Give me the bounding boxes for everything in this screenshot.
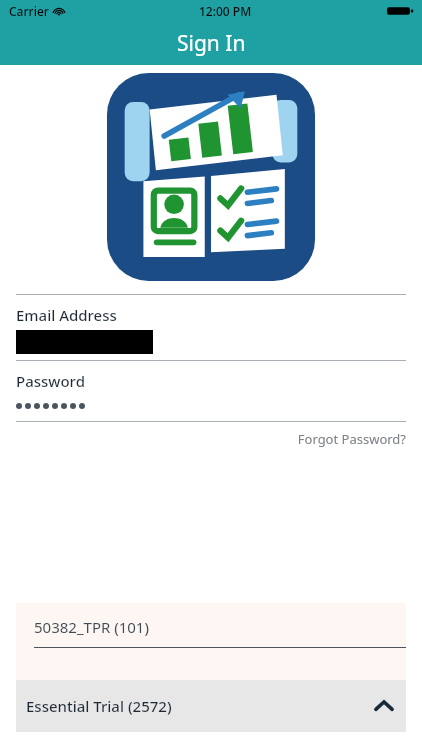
- staticText: Password: [16, 371, 85, 391]
- staticText: Sign In: [177, 29, 246, 58]
- button[interactable]: 50382_TPR (101): [16, 603, 406, 680]
- button[interactable]: Email address field: [16, 330, 406, 354]
- staticText: Forgot Password?: [297, 430, 406, 448]
- other: Collapse: [372, 694, 396, 718]
- button[interactable]: Forgot Password?: [297, 428, 406, 450]
- button[interactable]: [16, 397, 406, 415]
- staticText: 12:00 PM: [199, 3, 252, 19]
- button[interactable]: Essential Trial (2572): [16, 680, 406, 732]
- staticText: Essential Trial (2572): [26, 696, 172, 716]
- staticText: Email Address: [16, 305, 117, 325]
- staticText: Carrier: [9, 3, 49, 19]
- staticText: 50382_TPR (101): [34, 617, 149, 637]
